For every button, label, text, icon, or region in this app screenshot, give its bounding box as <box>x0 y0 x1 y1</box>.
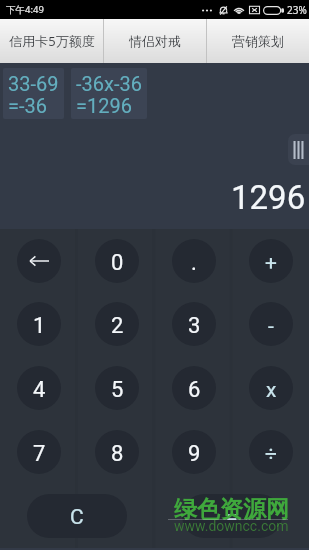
staticText: 信用卡5万额度 <box>9 32 95 50</box>
staticText: 9 <box>188 441 201 467</box>
other: Backspace <box>29 255 49 267</box>
staticText: 2 <box>111 313 124 339</box>
staticText: =-36 <box>8 94 47 117</box>
staticText: 33-69 <box>8 72 59 95</box>
button[interactable]: 信用卡5万额度 <box>0 19 103 63</box>
button[interactable]: 8 <box>95 430 139 474</box>
staticText: . <box>191 250 197 276</box>
staticText: x <box>266 378 277 403</box>
staticText: = <box>226 505 238 530</box>
button[interactable]: 5 <box>95 366 139 410</box>
button[interactable]: 0 <box>95 239 139 283</box>
button[interactable]: 情侣对戒 <box>104 19 206 63</box>
staticText: + <box>265 251 277 276</box>
staticText: 0 <box>111 250 124 276</box>
staticText: 3 <box>188 313 201 339</box>
staticText: 23% <box>287 3 307 17</box>
button[interactable]: 7 <box>17 430 61 474</box>
staticText: 8 <box>111 441 124 467</box>
staticText: ÷ <box>265 442 277 467</box>
button[interactable]: = <box>182 494 282 538</box>
button[interactable]: C <box>27 494 127 538</box>
button[interactable]: 2 <box>95 302 139 346</box>
staticText: =1296 <box>76 94 132 117</box>
staticText: 下午4:49 <box>6 3 44 16</box>
button[interactable]: . <box>172 239 216 283</box>
staticText: C <box>70 505 84 530</box>
staticText: - <box>268 314 274 339</box>
button[interactable]: 33-69 <box>3 68 64 119</box>
button[interactable]: Open history panel <box>288 134 309 165</box>
staticText: 1 <box>33 313 46 339</box>
staticText: 情侣对戒 <box>129 33 181 49</box>
button[interactable]: 6 <box>172 366 216 410</box>
staticText: 营销策划 <box>232 33 284 49</box>
button[interactable]: ÷ <box>249 430 293 474</box>
staticText: www.downcc.com <box>174 518 289 534</box>
staticText: 绿色资源网 <box>174 495 289 524</box>
staticText: 7 <box>33 441 46 467</box>
staticText: 1296 <box>231 178 306 217</box>
button[interactable]: x <box>249 366 293 410</box>
button[interactable]: 9 <box>172 430 216 474</box>
button[interactable]: 营销策划 <box>207 19 309 63</box>
button[interactable]: 3 <box>172 302 216 346</box>
button[interactable]: -36x-36 <box>71 68 147 119</box>
staticText: -36x-36 <box>76 72 142 95</box>
staticText: 4 <box>33 377 46 403</box>
button[interactable]: - <box>249 302 293 346</box>
staticText: 5 <box>111 377 124 403</box>
button[interactable]: + <box>249 239 293 283</box>
staticText: 6 <box>188 377 201 403</box>
button[interactable]: 1 <box>17 302 61 346</box>
button[interactable]: 4 <box>17 366 61 410</box>
button[interactable]: Backspace <box>17 239 61 283</box>
